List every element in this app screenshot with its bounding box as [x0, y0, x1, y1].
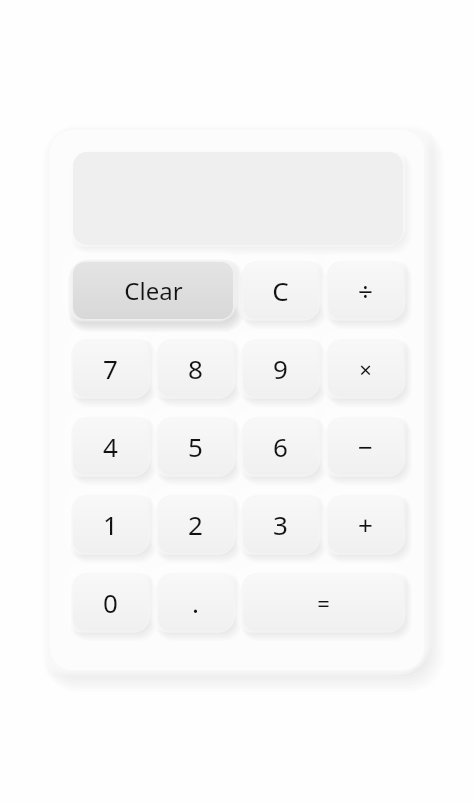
staticText: ×	[359, 354, 372, 384]
staticText: −	[358, 429, 373, 464]
button[interactable]: Clear	[73, 262, 233, 319]
staticText: 5	[188, 429, 203, 464]
staticText: 1	[103, 507, 118, 542]
staticText: Clear	[124, 274, 183, 307]
staticText: +	[358, 507, 373, 542]
button[interactable]: 3	[243, 496, 318, 553]
button[interactable]: Divide	[328, 262, 403, 319]
staticText: C	[272, 273, 289, 308]
button[interactable]: Plus	[328, 496, 403, 553]
staticText: =	[317, 588, 330, 618]
staticText: 7	[103, 351, 118, 386]
button[interactable]: C	[243, 262, 318, 319]
button[interactable]: Minus	[328, 418, 403, 475]
staticText: 6	[273, 429, 288, 464]
staticText: 4	[103, 429, 118, 464]
staticText: 3	[273, 507, 288, 542]
button[interactable]: 6	[243, 418, 318, 475]
button[interactable]: Decimal point	[158, 574, 233, 631]
staticText: .	[192, 585, 199, 620]
staticText: 0	[103, 585, 118, 620]
button[interactable]: 2	[158, 496, 233, 553]
staticText: 9	[273, 351, 288, 386]
button[interactable]: 4	[73, 418, 148, 475]
button[interactable]: 5	[158, 418, 233, 475]
button[interactable]: Equals	[243, 574, 403, 631]
staticText: 2	[188, 507, 203, 542]
button[interactable]: 7	[73, 340, 148, 397]
button[interactable]: 1	[73, 496, 148, 553]
staticText: ÷	[358, 273, 373, 308]
button[interactable]: Multiply	[328, 340, 403, 397]
button[interactable]: 9	[243, 340, 318, 397]
staticText: 8	[188, 351, 203, 386]
button[interactable]: 0	[73, 574, 148, 631]
button[interactable]: 8	[158, 340, 233, 397]
